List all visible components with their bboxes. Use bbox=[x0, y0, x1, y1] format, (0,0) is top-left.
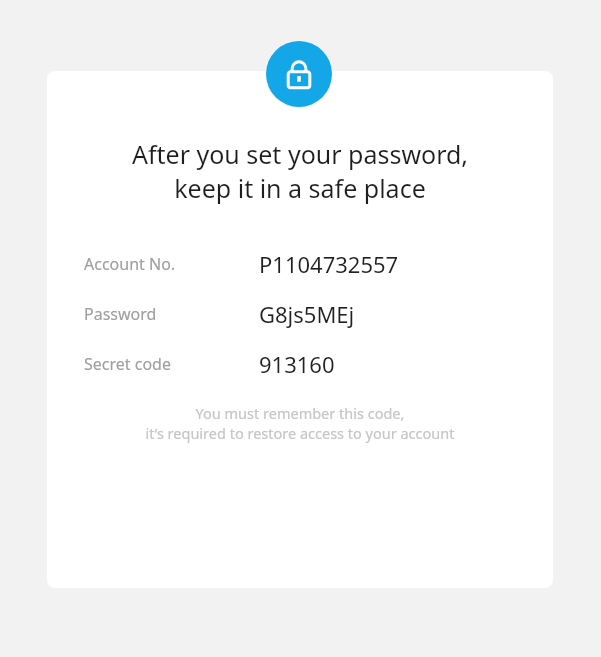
button[interactable]: Secure password bbox=[266, 41, 332, 107]
staticText: P1104732557 bbox=[259, 249, 399, 279]
staticText: Account No. bbox=[84, 253, 176, 275]
button[interactable]: Password bbox=[47, 299, 553, 329]
staticText: Password bbox=[84, 303, 157, 325]
staticText: You must remember this code, bbox=[47, 403, 553, 423]
staticText: After you set your password, bbox=[47, 137, 553, 171]
staticText: it’s required to restore access to your … bbox=[47, 423, 553, 443]
staticText: 913160 bbox=[259, 349, 335, 379]
staticText: keep it in a safe place bbox=[47, 171, 553, 205]
button[interactable]: Account No. bbox=[47, 249, 553, 279]
staticText: Secret code bbox=[84, 353, 171, 375]
button[interactable]: Secret code bbox=[47, 349, 553, 379]
staticText: G8js5MEj bbox=[259, 299, 355, 329]
